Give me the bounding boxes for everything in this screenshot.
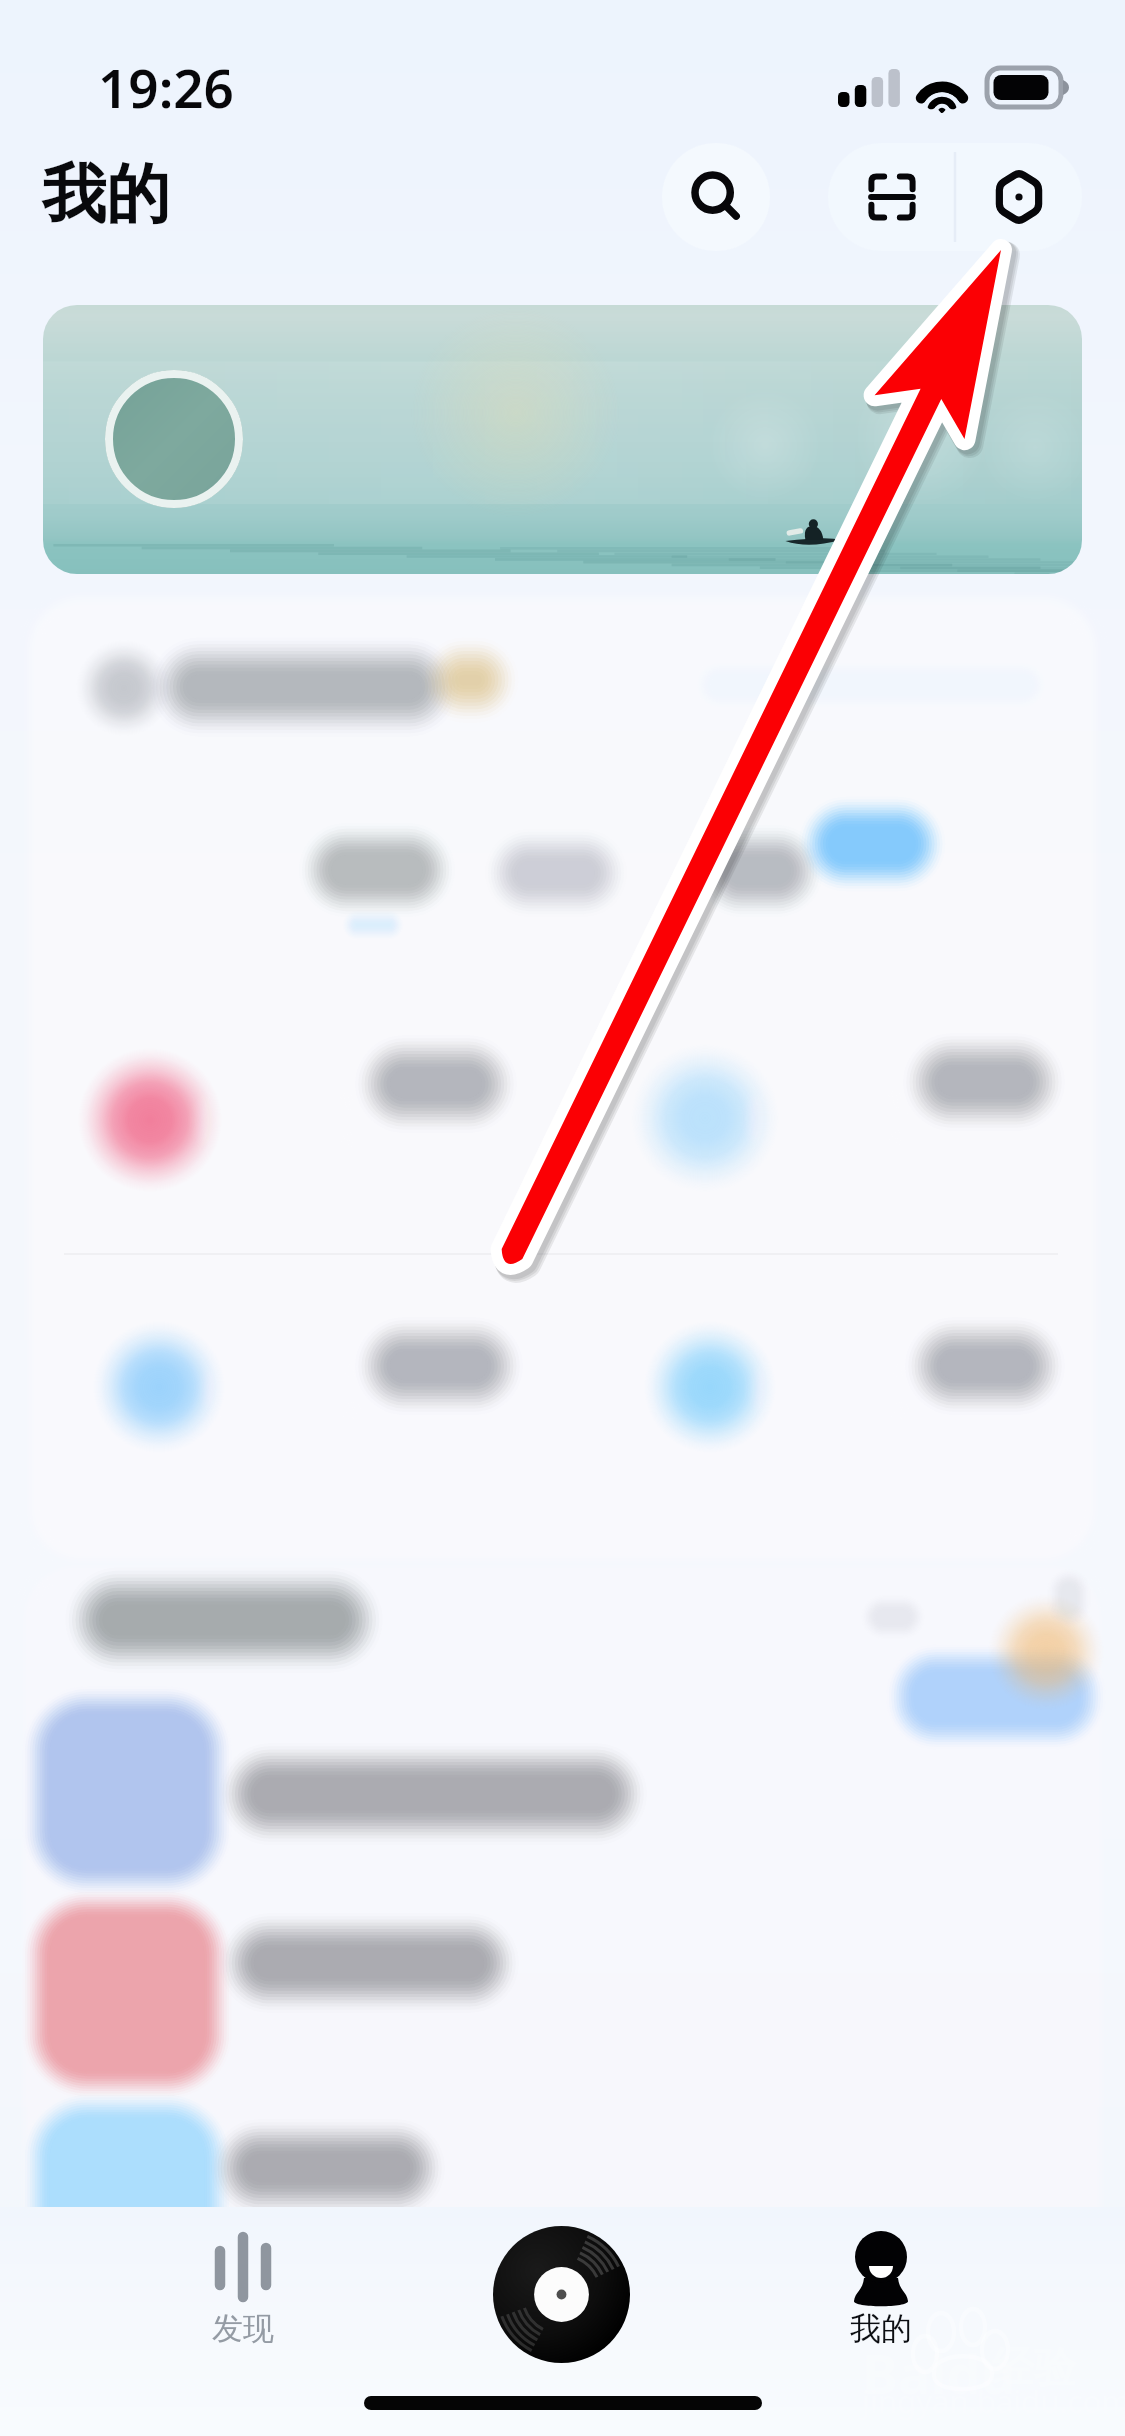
button[interactable]: Search bbox=[662, 143, 770, 251]
button[interactable]: Scan QR code bbox=[828, 143, 955, 251]
button[interactable]: 发现 bbox=[118, 2218, 368, 2362]
button[interactable]: Settings bbox=[955, 143, 1082, 251]
button[interactable]: Now playing bbox=[493, 2226, 630, 2363]
staticText: Baidu bbox=[862, 2336, 1016, 2410]
staticText: 19:26 bbox=[98, 51, 234, 123]
button[interactable] bbox=[43, 305, 1082, 574]
button[interactable]: 我的 bbox=[756, 2218, 1006, 2362]
staticText: 我的 bbox=[850, 2309, 912, 2348]
staticText: 我的 bbox=[42, 154, 170, 235]
staticText: 发现 bbox=[212, 2309, 274, 2348]
